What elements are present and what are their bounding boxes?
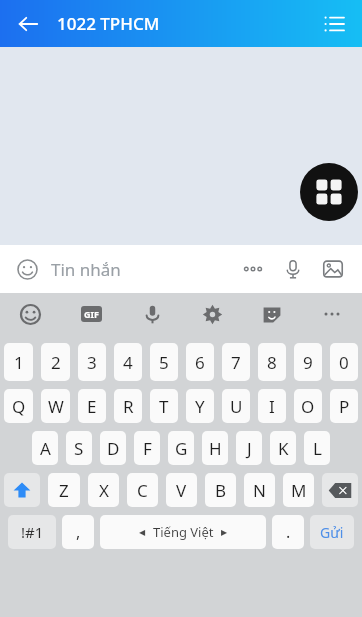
button[interactable]: A [32, 431, 58, 465]
staticText: S [74, 437, 84, 460]
button[interactable]: 8 [258, 343, 286, 381]
staticText: M [291, 479, 307, 502]
button[interactable]: Y [186, 389, 214, 423]
staticText: 7 [231, 351, 241, 374]
staticText: D [107, 437, 120, 460]
button[interactable]: L [304, 431, 330, 465]
staticText: 4 [123, 351, 133, 374]
button[interactable]: 0 [330, 343, 358, 381]
staticText: 2 [51, 351, 61, 374]
staticText: ◀ [139, 528, 146, 537]
button[interactable]: V [166, 473, 197, 507]
button[interactable]: X [88, 473, 119, 507]
button[interactable]: Period [272, 515, 304, 549]
button[interactable]: Back [8, 4, 48, 44]
staticText: Q [12, 395, 26, 418]
staticText: 6 [195, 351, 205, 374]
button[interactable]: GIF [61, 293, 122, 335]
staticText: 3 [87, 351, 97, 374]
button[interactable]: Emoji [0, 293, 61, 335]
button[interactable]: Gửi [310, 515, 354, 549]
button[interactable]: F [134, 431, 160, 465]
staticText: I [269, 395, 275, 418]
button[interactable]: S [66, 431, 92, 465]
button[interactable]: 2 [41, 343, 70, 381]
staticText: A [40, 437, 51, 460]
staticText: Z [59, 479, 69, 502]
button[interactable]: G [168, 431, 194, 465]
staticText: T [159, 395, 169, 418]
button[interactable]: U [222, 389, 250, 423]
button[interactable]: 3 [78, 343, 106, 381]
staticText: , [76, 521, 81, 543]
button[interactable]: Emoji [12, 254, 42, 284]
button[interactable]: Space, Tiếng Việt [100, 515, 266, 549]
staticText: 9 [303, 351, 313, 374]
button[interactable]: More [302, 293, 362, 335]
staticText: GIF [84, 308, 99, 320]
staticText: J [247, 437, 252, 460]
staticText: 1022 TPHCM [57, 12, 160, 35]
button[interactable]: H [202, 431, 228, 465]
button[interactable]: !#1 [8, 515, 56, 549]
button[interactable]: P [330, 389, 358, 423]
button[interactable]: O [294, 389, 322, 423]
staticText: F [143, 437, 152, 460]
staticText: 0 [339, 351, 349, 374]
staticText: O [301, 395, 315, 418]
button[interactable]: List menu [314, 4, 354, 44]
button[interactable]: Keyboard settings [182, 293, 242, 335]
button[interactable]: Backspace [322, 473, 358, 507]
staticText: Tiếng Việt [153, 523, 214, 541]
button[interactable]: K [270, 431, 296, 465]
button[interactable]: Apps grid [300, 163, 358, 221]
button[interactable]: E [78, 389, 106, 423]
button[interactable]: W [41, 389, 70, 423]
staticText: P [339, 395, 350, 418]
button[interactable]: Shift [4, 473, 40, 507]
button[interactable]: T [150, 389, 178, 423]
button[interactable]: C [127, 473, 158, 507]
button[interactable]: Stickers [242, 293, 302, 335]
button[interactable]: Comma [62, 515, 94, 549]
staticText: 5 [159, 351, 169, 374]
button[interactable]: 4 [114, 343, 142, 381]
staticText: !#1 [21, 522, 44, 542]
staticText: ▶ [221, 528, 228, 537]
button[interactable]: Q [4, 389, 33, 423]
staticText: 8 [267, 351, 277, 374]
button[interactable]: Voice message [276, 252, 310, 286]
staticText: Gửi [320, 523, 344, 542]
staticText: H [209, 437, 222, 460]
button[interactable]: 5 [150, 343, 178, 381]
button[interactable]: Voice input [122, 293, 182, 335]
button[interactable]: 7 [222, 343, 250, 381]
staticText: B [215, 479, 227, 502]
staticText: E [87, 395, 97, 418]
button[interactable]: B [205, 473, 236, 507]
button[interactable]: J [236, 431, 262, 465]
staticText: V [176, 479, 187, 502]
button[interactable]: N [244, 473, 275, 507]
staticText: X [99, 479, 109, 502]
button[interactable]: 6 [186, 343, 214, 381]
staticText: 1 [14, 351, 24, 374]
staticText: W [48, 395, 64, 418]
button[interactable]: M [283, 473, 314, 507]
staticText: U [230, 395, 243, 418]
staticText: Tin nhắn [51, 258, 121, 281]
button[interactable]: Z [48, 473, 80, 507]
staticText: K [278, 437, 289, 460]
staticText: Y [195, 395, 205, 418]
staticText: R [123, 395, 134, 418]
button[interactable]: More options [236, 252, 270, 286]
button[interactable]: I [258, 389, 286, 423]
button[interactable]: R [114, 389, 142, 423]
staticText: L [313, 437, 322, 460]
staticText: G [175, 437, 188, 460]
button[interactable]: Send image [316, 252, 350, 286]
button[interactable]: 1 [4, 343, 33, 381]
button[interactable]: 9 [294, 343, 322, 381]
staticText: N [253, 479, 266, 502]
button[interactable]: D [100, 431, 126, 465]
